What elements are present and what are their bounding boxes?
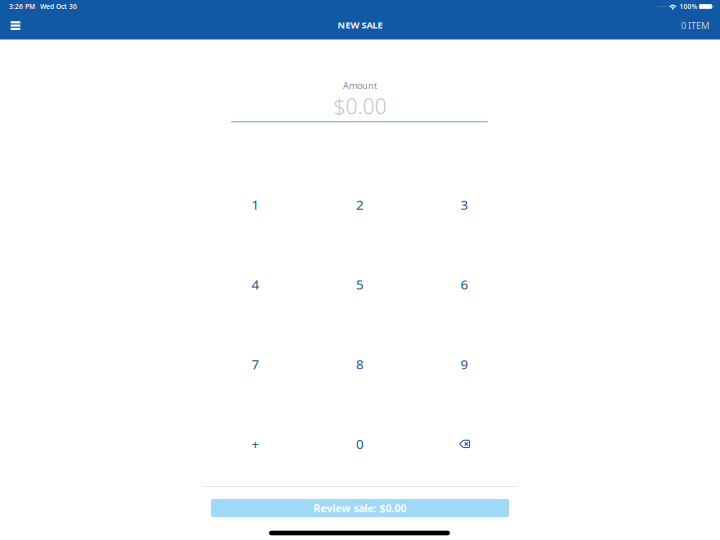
button[interactable]: 8 [308, 324, 412, 404]
staticText: Review sale: $0.00 [313, 501, 406, 515]
button[interactable]: 1 [203, 165, 308, 244]
button[interactable]: 4 [203, 244, 308, 324]
staticText: $0.00 [333, 92, 386, 120]
button[interactable]: 5 [308, 244, 412, 324]
staticText: 9 [460, 355, 468, 373]
button[interactable]: 7 [203, 324, 308, 404]
button[interactable]: Menu [2, 13, 28, 39]
staticText: 0 ITEM [681, 19, 709, 32]
staticText: Wed Oct 30 [40, 2, 77, 11]
staticText: Amount [343, 79, 377, 92]
button[interactable]: 0 ITEM [671, 12, 709, 38]
staticText: 3 [460, 196, 468, 213]
staticText: 1 [251, 196, 259, 213]
button[interactable]: Delete [412, 404, 517, 484]
staticText: 3:26 PM [9, 2, 35, 11]
button[interactable]: Review sale: $0.00 [211, 499, 509, 517]
staticText: NEW SALE [337, 19, 382, 31]
button[interactable]: 0 [308, 404, 412, 484]
button[interactable]: 6 [412, 244, 517, 324]
button[interactable]: 9 [412, 324, 517, 404]
button[interactable]: + [203, 404, 308, 484]
staticText: 8 [356, 355, 364, 373]
staticText: + [251, 435, 259, 453]
button[interactable]: 2 [308, 165, 412, 244]
staticText: 7 [251, 355, 259, 373]
staticText: 0 [356, 435, 364, 453]
staticText: 2 [356, 196, 364, 213]
staticText: 100% [680, 2, 698, 11]
button[interactable]: 3 [412, 165, 517, 244]
staticText: 6 [460, 275, 468, 293]
staticText: 5 [356, 275, 364, 293]
staticText: 4 [251, 275, 259, 293]
